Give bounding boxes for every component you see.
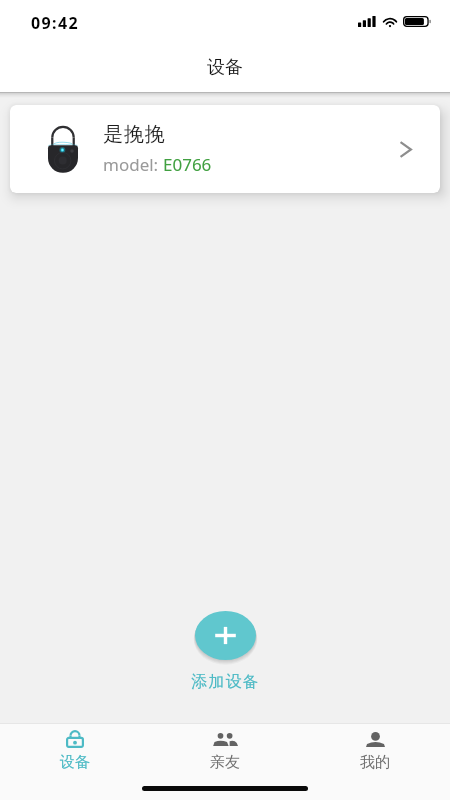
staticText: 设备 xyxy=(207,56,243,79)
staticText: E0766 xyxy=(163,153,212,176)
button[interactable]: 亲友 xyxy=(150,724,300,777)
staticText: 添加设备 xyxy=(191,672,260,692)
staticText: 09:42 xyxy=(31,12,80,34)
staticText: 我的 xyxy=(360,753,390,772)
button[interactable]: 添加设备 xyxy=(185,670,266,694)
button[interactable]: 设备 xyxy=(0,724,150,777)
staticText: model: xyxy=(103,153,163,176)
button[interactable]: Add device xyxy=(195,611,256,664)
staticText: 是挽挽 xyxy=(103,122,166,147)
staticText: 亲友 xyxy=(210,753,240,772)
staticText: 设备 xyxy=(60,753,90,772)
button[interactable]: 是挽挽 xyxy=(10,105,440,193)
button[interactable]: 我的 xyxy=(300,724,450,777)
